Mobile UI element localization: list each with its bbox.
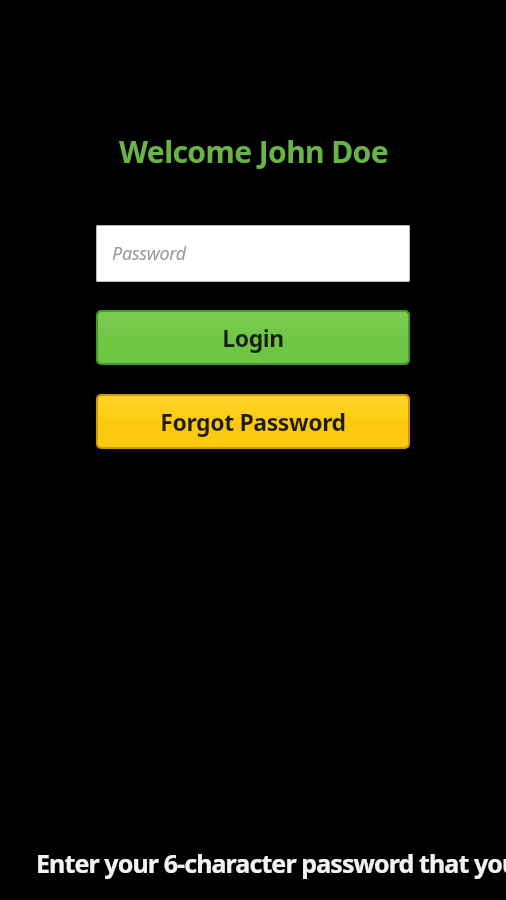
button[interactable]: Forgot Password [96, 394, 410, 449]
button[interactable]: Login [96, 310, 410, 365]
staticText: Login [222, 322, 284, 353]
staticText: Forgot Password [160, 406, 346, 437]
button[interactable]: Password [96, 225, 410, 282]
staticText: Enter your 6-character password that you [36, 846, 506, 880]
staticText: Welcome John Doe [119, 131, 388, 172]
staticText: Password [112, 241, 186, 266]
